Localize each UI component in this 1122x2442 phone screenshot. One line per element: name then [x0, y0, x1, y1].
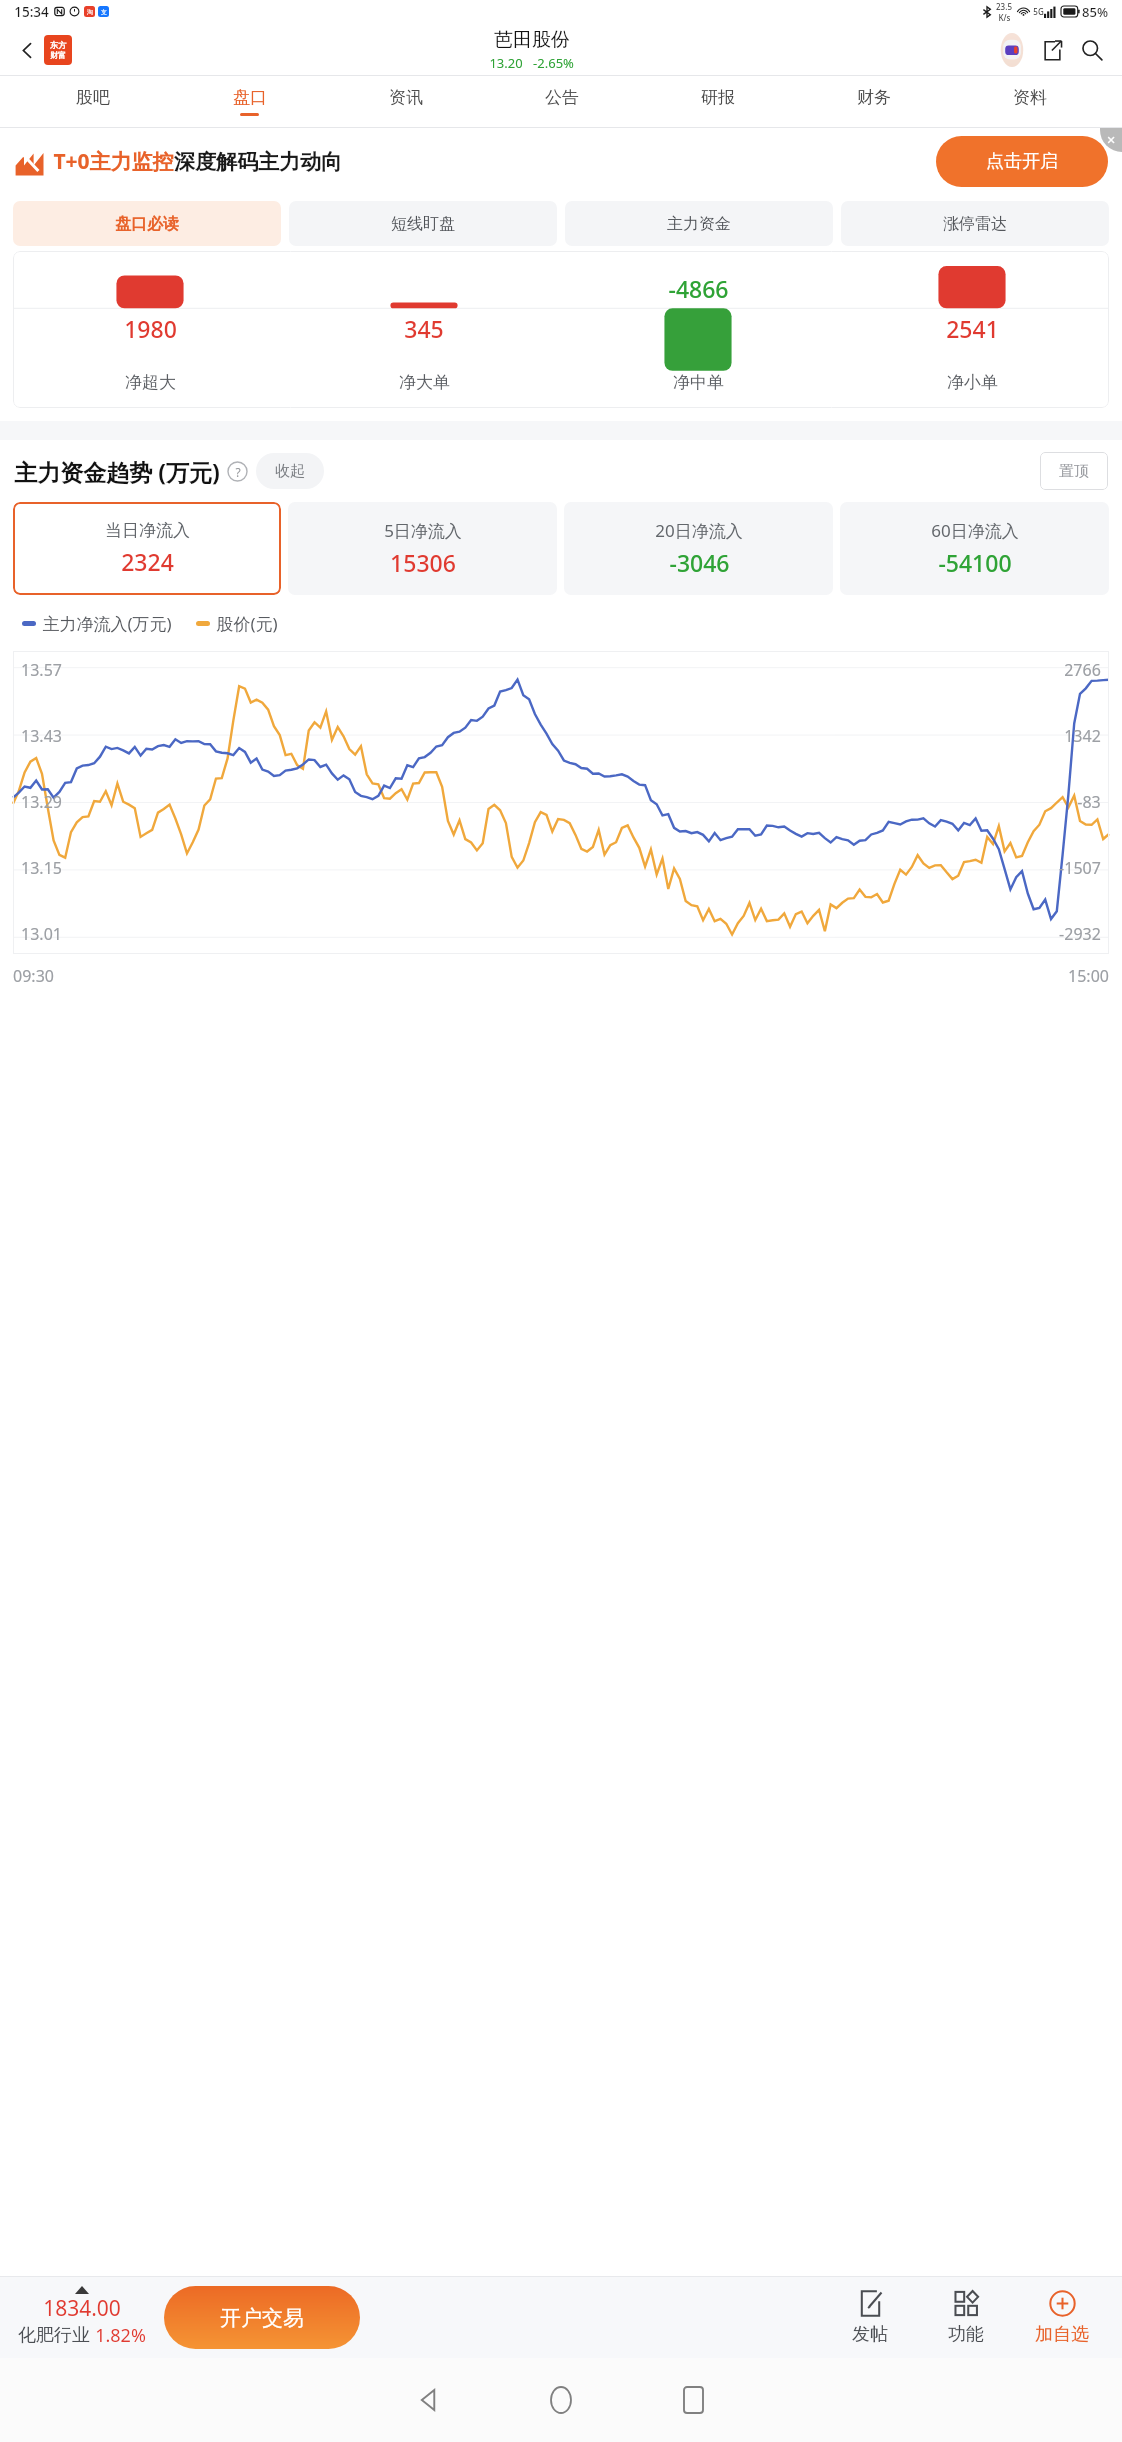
- button[interactable]: 点击开启: [936, 136, 1108, 187]
- staticText: 盘口必读: [115, 214, 179, 234]
- staticText: 深度解码主力动向: [174, 149, 342, 175]
- staticText: 5G: [1033, 6, 1044, 17]
- staticText: -2.65%: [533, 54, 574, 72]
- button[interactable]: Search: [1072, 30, 1112, 70]
- staticText: 开户交易: [220, 2305, 304, 2331]
- button[interactable]: 盘口: [171, 76, 328, 128]
- button[interactable]: 加自选: [1014, 2276, 1110, 2358]
- staticText: 13.29: [21, 791, 62, 813]
- staticText: ✕: [1106, 134, 1116, 147]
- staticText: ?: [235, 464, 241, 480]
- staticText: 60日净流入: [931, 519, 1019, 542]
- staticText: 主力资金趋势 (万元): [14, 456, 220, 487]
- staticText: 芭田股份: [494, 28, 570, 52]
- staticText: 收起: [275, 462, 305, 481]
- staticText: 主力净流入(万元): [42, 612, 172, 635]
- button[interactable]: Assistant: [992, 30, 1032, 70]
- staticText: 净小单: [947, 372, 998, 393]
- staticText: 09:30: [13, 965, 54, 987]
- staticText: 15:34: [14, 3, 49, 21]
- staticText: 2324: [121, 546, 174, 577]
- button[interactable]: Recents: [655, 2362, 731, 2438]
- staticText: 13.15: [21, 857, 62, 879]
- button[interactable]: Share: [1032, 30, 1072, 70]
- button[interactable]: 主力资金: [565, 201, 833, 246]
- staticText: 15:00: [1068, 965, 1109, 987]
- button[interactable]: 发帖: [822, 2276, 918, 2358]
- staticText: 85%: [1082, 3, 1108, 21]
- staticText: 涨停雷达: [943, 214, 1007, 234]
- staticText: 点击开启: [986, 150, 1058, 173]
- staticText: 支: [101, 8, 107, 16]
- staticText: K/s: [998, 12, 1011, 23]
- staticText: 置顶: [1059, 462, 1089, 481]
- staticText: 股价(元): [216, 612, 278, 635]
- staticText: 1834.00: [43, 2294, 121, 2323]
- staticText: -2932: [1059, 923, 1101, 945]
- button[interactable]: 公告: [484, 76, 640, 128]
- staticText: -1507: [1059, 857, 1101, 879]
- button[interactable]: 短线盯盘: [289, 201, 557, 246]
- staticText: 13.57: [21, 659, 62, 681]
- staticText: 15306: [390, 547, 456, 578]
- staticText: 1.82%: [95, 2323, 146, 2348]
- staticText: 功能: [948, 2323, 984, 2346]
- staticText: 13.43: [21, 725, 62, 747]
- staticText: 发帖: [852, 2323, 888, 2346]
- staticText: 13.01: [21, 923, 62, 945]
- button[interactable]: 20日净流入: [564, 502, 833, 595]
- staticText: 2766: [1064, 659, 1101, 681]
- staticText: 5日净流入: [384, 519, 462, 542]
- staticText: 2541: [946, 313, 999, 344]
- button[interactable]: Home: [523, 2362, 599, 2438]
- staticText: 财务: [857, 87, 891, 108]
- staticText: 研报: [701, 87, 735, 108]
- staticText: 13.20: [489, 54, 523, 72]
- button[interactable]: 5日净流入: [288, 502, 557, 595]
- button[interactable]: Close: [1100, 128, 1122, 152]
- button[interactable]: 1834.00: [8, 2286, 156, 2348]
- staticText: T+0主力监控: [53, 147, 174, 176]
- staticText: 东方: [50, 40, 66, 50]
- button[interactable]: Back: [10, 33, 44, 67]
- staticText: 345: [404, 313, 444, 344]
- button[interactable]: Help: [227, 461, 248, 482]
- button[interactable]: 功能: [918, 2276, 1014, 2358]
- button[interactable]: 东方: [44, 35, 72, 65]
- staticText: -4866: [668, 273, 729, 304]
- staticText: 盘口: [233, 87, 267, 108]
- staticText: 净大单: [399, 372, 450, 393]
- staticText: 公告: [545, 87, 579, 108]
- staticText: 1980: [124, 313, 177, 344]
- staticText: 20日净流入: [655, 519, 743, 542]
- staticText: 短线盯盘: [391, 214, 455, 234]
- button[interactable]: 收起: [256, 453, 324, 489]
- staticText: 1342: [1064, 725, 1101, 747]
- button[interactable]: 资讯: [328, 76, 484, 128]
- staticText: 23.5: [996, 1, 1012, 12]
- staticText: -54100: [938, 547, 1012, 578]
- button[interactable]: 股吧: [14, 76, 171, 128]
- staticText: 加自选: [1035, 2323, 1089, 2346]
- button[interactable]: 涨停雷达: [841, 201, 1109, 246]
- button[interactable]: 60日净流入: [840, 502, 1109, 595]
- button[interactable]: 当日净流入: [13, 502, 281, 595]
- staticText: 当日净流入: [105, 520, 190, 541]
- staticText: 资讯: [389, 87, 423, 108]
- staticText: 主力资金: [667, 214, 731, 234]
- button[interactable]: 盘口必读: [13, 201, 281, 246]
- button[interactable]: 资料: [952, 76, 1108, 128]
- staticText: 股吧: [76, 87, 110, 108]
- button[interactable]: 研报: [640, 76, 796, 128]
- staticText: 化肥行业: [18, 2324, 90, 2347]
- staticText: -3046: [669, 547, 730, 578]
- button[interactable]: 置顶: [1040, 452, 1108, 490]
- staticText: 净超大: [125, 372, 176, 393]
- staticText: 净中单: [673, 372, 724, 393]
- button[interactable]: 1980: [13, 251, 1109, 408]
- staticText: 淘: [87, 8, 93, 16]
- button[interactable]: 财务: [796, 76, 952, 128]
- button[interactable]: 开户交易: [164, 2286, 360, 2349]
- button[interactable]: Back: [391, 2362, 467, 2438]
- staticText: 财富: [50, 50, 66, 60]
